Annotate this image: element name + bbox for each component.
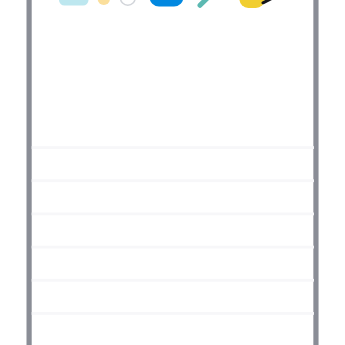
button[interactable]: Pen	[237, 0, 275, 8]
button[interactable]: Eraser	[119, 0, 137, 7]
button[interactable]: List item 3	[0, 214, 345, 247]
button[interactable]: Highlighter	[56, 0, 92, 8]
button[interactable]: List item 1	[0, 148, 345, 181]
button[interactable]: Brush	[147, 0, 184, 7]
button[interactable]: List item 2	[0, 181, 345, 214]
button[interactable]: List item 5	[0, 280, 345, 313]
button[interactable]: List item 6	[0, 313, 345, 345]
button[interactable]: Line tool	[194, 0, 214, 8]
button[interactable]: Marker	[95, 0, 113, 7]
button[interactable]: List item 4	[0, 247, 345, 280]
